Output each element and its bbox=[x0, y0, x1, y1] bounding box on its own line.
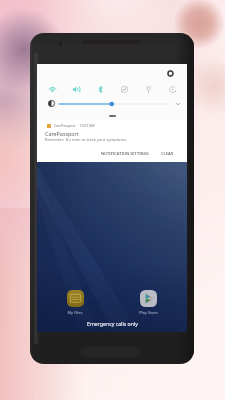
button[interactable]: Auto rotate bbox=[160, 82, 184, 96]
staticText: CarePassport · 10:07 AM bbox=[54, 123, 95, 128]
button[interactable]: CLEAR bbox=[158, 149, 177, 158]
button[interactable]: Bluetooth bbox=[88, 82, 112, 96]
staticText: Play Store bbox=[139, 310, 158, 315]
staticText: Emergency calls only bbox=[87, 320, 138, 327]
staticText: CLEAR bbox=[161, 151, 174, 156]
button[interactable]: NOTIFICATION SETTINGS bbox=[98, 149, 152, 158]
button[interactable]: Wi-Fi bbox=[40, 82, 64, 96]
button[interactable]: Do not disturb bbox=[112, 82, 136, 96]
button[interactable]: Flashlight bbox=[136, 82, 160, 96]
button[interactable]: My Files bbox=[58, 290, 92, 315]
staticText: Reminder: It's time to track your sympto… bbox=[45, 137, 128, 142]
button[interactable]: Expand bbox=[171, 97, 184, 110]
staticText: NOTIFICATION SETTINGS bbox=[101, 151, 149, 156]
button[interactable]: Sound bbox=[64, 82, 88, 96]
button[interactable]: Play Store bbox=[131, 290, 165, 315]
staticText: CarePassport bbox=[45, 130, 79, 137]
button[interactable]: Settings bbox=[164, 67, 177, 80]
staticText: My Files bbox=[67, 310, 83, 315]
